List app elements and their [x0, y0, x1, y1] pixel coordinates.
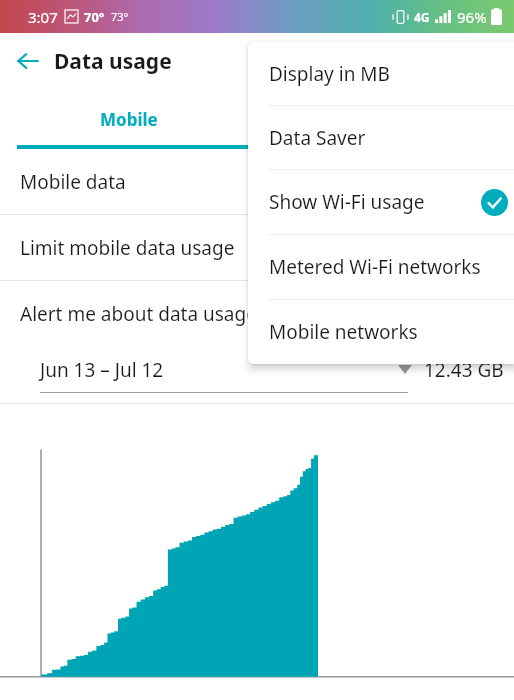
button[interactable]: Limit mobile data usage: [0, 215, 514, 280]
staticText: Data usage: [54, 47, 172, 76]
staticText: Mobile data: [20, 169, 126, 195]
staticText: 73°: [111, 9, 129, 24]
staticText: Mobile networks: [269, 319, 418, 345]
button[interactable]: Mobile data: [0, 149, 514, 214]
staticText: Metered Wi-Fi networks: [269, 254, 481, 280]
staticText: 4G: [414, 9, 430, 25]
button[interactable]: Metered Wi-Fi networks: [248, 235, 514, 299]
button[interactable]: Data Saver: [248, 106, 514, 169]
staticText: Alert me about data usage: [20, 301, 257, 327]
staticText: 12.43 GB: [424, 357, 504, 383]
button[interactable]: Show Wi-Fi usage: [248, 170, 514, 234]
staticText: Jun 13 – Jul 12: [40, 357, 164, 383]
staticText: Limit mobile data usage: [20, 235, 235, 261]
staticText: Mobile: [100, 108, 158, 131]
button[interactable]: Back: [10, 43, 46, 79]
staticText: Data Saver: [269, 125, 366, 151]
button[interactable]: Alert me about data usage: [0, 281, 514, 346]
staticText: 3:07: [28, 7, 58, 27]
button[interactable]: Display in MB: [248, 42, 514, 105]
button[interactable]: Jun 13 – Jul 12: [0, 346, 514, 393]
staticText: Show Wi-Fi usage: [269, 189, 425, 215]
staticText: Display in MB: [269, 61, 390, 87]
staticText: 96%: [457, 7, 487, 27]
staticText: 70°: [84, 8, 105, 26]
button[interactable]: Mobile: [0, 89, 257, 149]
button[interactable]: Mobile networks: [248, 300, 514, 364]
